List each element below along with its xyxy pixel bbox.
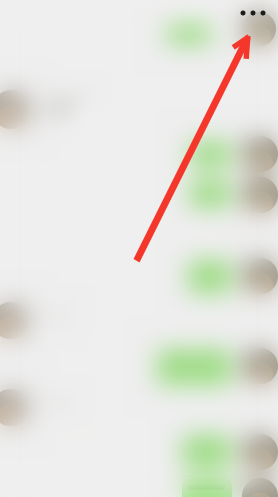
button[interactable]: More options <box>233 0 273 26</box>
